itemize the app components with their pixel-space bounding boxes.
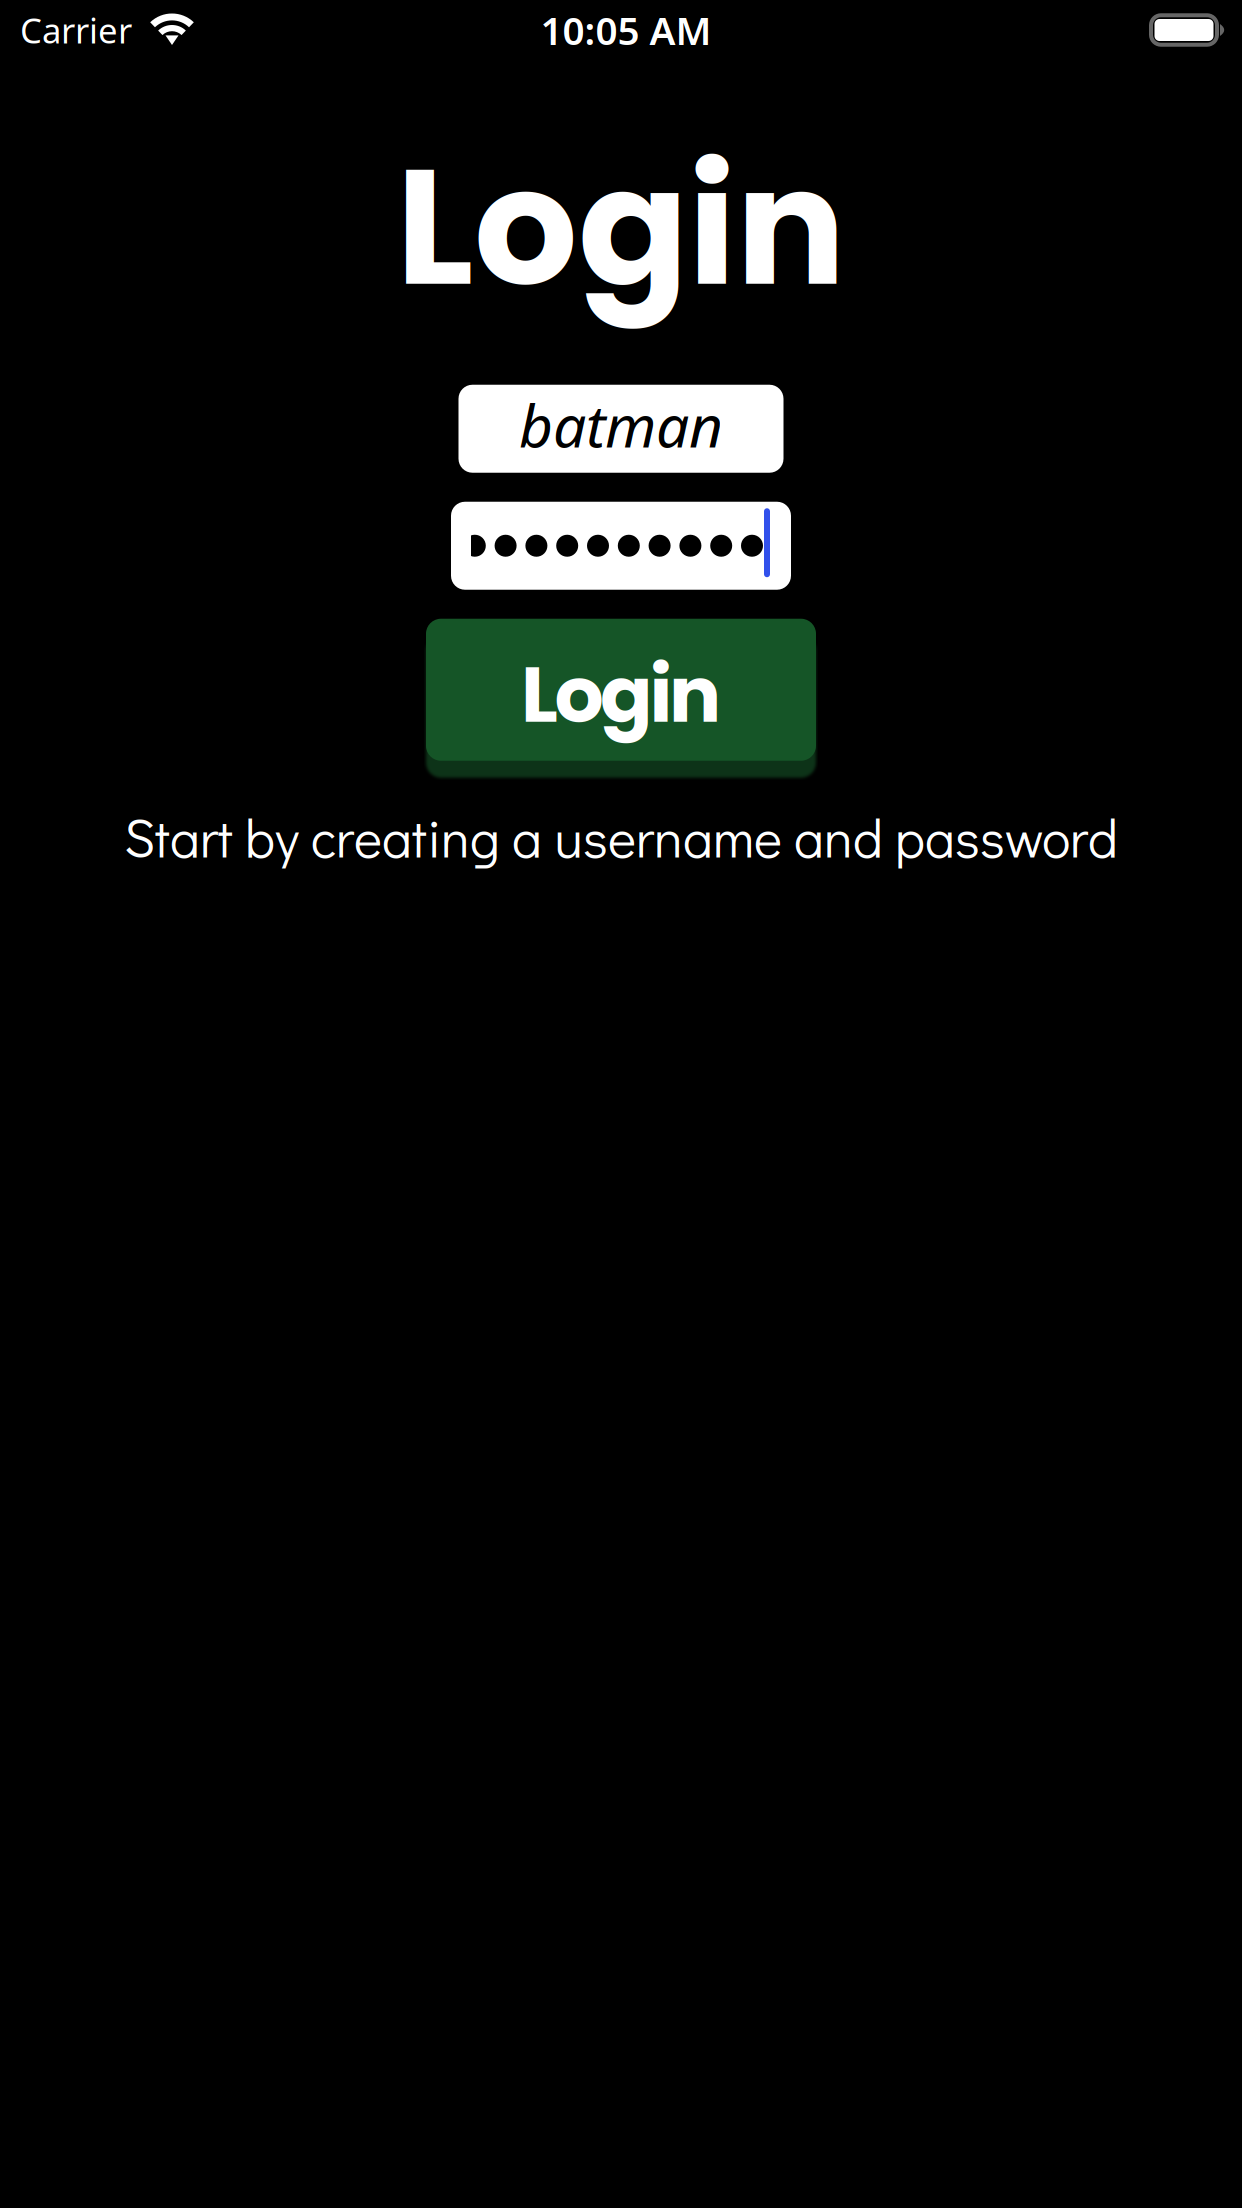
staticText: batman [519,385,723,465]
button[interactable]: Password [451,502,791,590]
staticText: Carrier [20,6,132,54]
staticText: Login [396,113,846,341]
staticText: Start by creating a username and passwor… [124,802,1118,872]
button[interactable]: Login [426,619,816,761]
staticText: 10:05 AM [540,4,711,56]
staticText: Login [521,641,721,749]
button[interactable]: batman [458,385,783,473]
